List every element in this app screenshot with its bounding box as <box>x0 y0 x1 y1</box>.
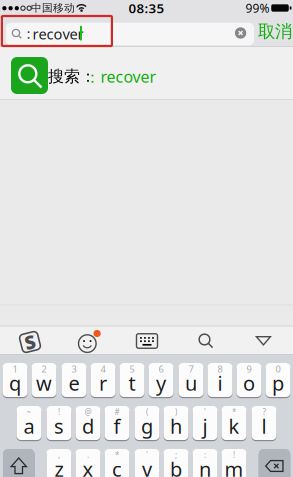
button[interactable]: c <box>104 448 129 477</box>
staticText: b <box>170 456 182 477</box>
staticText: p <box>272 370 284 396</box>
staticText: 9 <box>246 363 251 375</box>
button[interactable]: m <box>221 448 246 477</box>
staticText: c <box>112 456 122 477</box>
staticText: r <box>99 370 107 396</box>
button[interactable]: Clear text <box>235 27 246 39</box>
staticText: 99% <box>245 0 269 16</box>
staticText: v <box>142 456 152 477</box>
staticText: o <box>243 370 255 396</box>
button[interactable]: 取消 <box>258 21 292 42</box>
button[interactable]: o <box>236 362 261 398</box>
staticText: f <box>113 413 120 439</box>
staticText: h <box>170 413 182 439</box>
staticText: t <box>128 370 135 396</box>
button[interactable]: i <box>207 362 232 398</box>
button[interactable]: Dismiss keyboard <box>255 335 271 346</box>
staticText: ! <box>58 407 60 417</box>
button[interactable]: n <box>192 448 217 477</box>
staticText: 7 <box>188 363 193 375</box>
staticText: ) <box>175 407 177 417</box>
button[interactable]: w <box>31 362 56 398</box>
button[interactable]: s <box>46 405 71 441</box>
staticText: 取消 <box>258 21 292 42</box>
staticText: * <box>115 450 119 460</box>
staticText: 08:35 <box>128 0 164 17</box>
button[interactable]: x <box>75 448 100 477</box>
staticText: ( <box>146 407 148 417</box>
staticText: n <box>199 456 211 477</box>
staticText: 1 <box>12 363 17 375</box>
staticText: # <box>114 407 119 417</box>
button[interactable]: Delete <box>259 448 290 477</box>
button[interactable]: u <box>178 362 203 398</box>
staticText: g <box>141 413 153 439</box>
staticText: ? <box>262 407 265 417</box>
staticText: ： <box>21 25 36 43</box>
staticText: 8 <box>217 363 222 375</box>
staticText: S <box>24 330 35 354</box>
staticText: 6 <box>158 363 163 375</box>
button[interactable]: Search field <box>6 23 254 45</box>
staticText: m <box>224 456 243 477</box>
button[interactable]: Search <box>198 333 214 349</box>
staticText: e <box>68 370 79 396</box>
button[interactable]: t <box>119 362 144 398</box>
button[interactable]: Shift <box>3 448 34 477</box>
staticText: z <box>54 456 63 477</box>
staticText: i <box>217 370 222 396</box>
button[interactable]: j <box>192 405 217 441</box>
staticText: s <box>54 413 64 439</box>
button[interactable]: Sogou input <box>18 330 42 354</box>
staticText: x <box>82 456 93 477</box>
staticText: j <box>202 413 207 439</box>
staticText: 5 <box>129 363 134 375</box>
staticText: k <box>228 413 239 439</box>
staticText: u <box>185 370 197 396</box>
button[interactable]: k <box>221 405 246 441</box>
staticText: w <box>36 370 52 396</box>
button[interactable]: r <box>90 362 115 398</box>
button[interactable]: l <box>251 405 276 441</box>
staticText: ' <box>146 450 148 460</box>
staticText: @ <box>84 407 91 417</box>
staticText: q <box>9 370 21 396</box>
staticText: a <box>23 413 34 439</box>
button[interactable]: z <box>46 448 71 477</box>
staticText: * <box>232 407 236 417</box>
staticText: 2 <box>41 363 46 375</box>
staticText: 0 <box>275 363 280 375</box>
button[interactable]: d <box>75 405 100 441</box>
button[interactable]: 搜索： <box>0 47 293 100</box>
staticText: 搜索： <box>48 67 96 86</box>
staticText: , <box>58 450 60 460</box>
staticText: d <box>82 413 94 439</box>
button[interactable]: q <box>2 362 27 398</box>
button[interactable]: p <box>265 362 290 398</box>
staticText: . <box>87 450 89 460</box>
staticText: ; <box>175 450 177 460</box>
button[interactable]: a <box>16 405 41 441</box>
staticText: ! <box>233 450 235 460</box>
button[interactable]: Keyboard <box>136 334 157 348</box>
staticText: 3 <box>71 363 76 375</box>
button[interactable]: f <box>104 405 129 441</box>
button[interactable]: b <box>163 448 188 477</box>
staticText: : <box>204 450 206 460</box>
staticText: l <box>261 413 266 439</box>
button[interactable]: v <box>134 448 159 477</box>
button[interactable]: Emoji <box>78 329 101 353</box>
staticText: 中国移动 <box>31 1 75 14</box>
staticText: ' <box>204 407 206 417</box>
staticText: recover <box>32 24 83 44</box>
staticText: ：recover <box>84 66 156 87</box>
staticText: ~ <box>26 407 31 417</box>
button[interactable]: y <box>148 362 173 398</box>
button[interactable]: e <box>61 362 86 398</box>
button[interactable]: h <box>163 405 188 441</box>
staticText: 4 <box>100 363 105 375</box>
staticText: y <box>156 370 166 396</box>
button[interactable]: g <box>134 405 159 441</box>
